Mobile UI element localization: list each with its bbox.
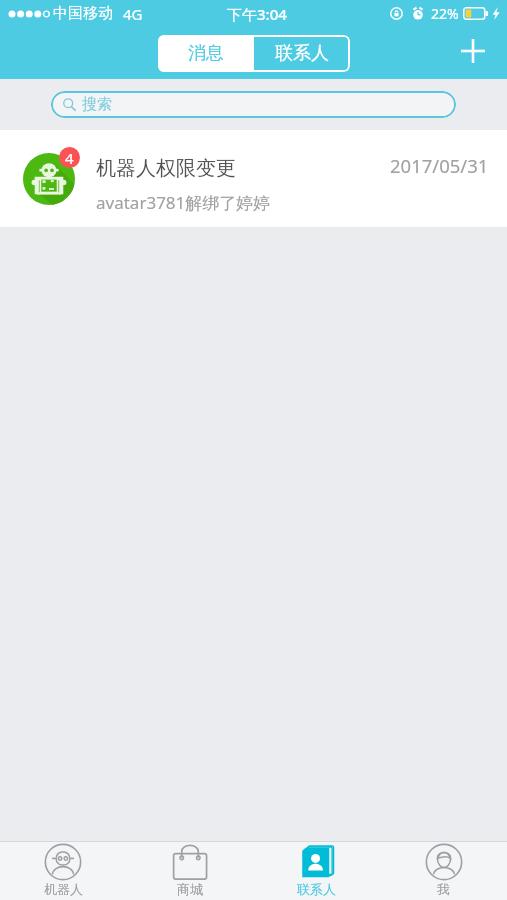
button[interactable]: 消息 [158,35,254,72]
staticText: 22% [431,4,459,23]
button[interactable]: 4 [0,130,507,227]
button[interactable]: 搜索 [51,91,456,118]
staticText: 我 [437,881,450,897]
staticText: 4G [123,4,143,24]
button[interactable]: Add [450,25,496,77]
button[interactable]: 我 [380,842,507,900]
staticText: 联系人 [297,881,336,897]
staticText: 中国移动 [53,4,113,23]
button[interactable]: 联系人 [253,842,380,900]
button[interactable]: 机器人 [0,842,126,900]
staticText: 商城 [177,881,203,897]
staticText: 4 [65,148,74,168]
button[interactable]: 商城 [126,842,253,900]
staticText: 下午3:04 [227,4,287,24]
staticText: 机器人 [44,881,83,897]
staticText: 机器人权限变更 [96,156,236,181]
staticText: 联系人 [275,42,329,65]
button[interactable]: 联系人 [254,35,350,72]
staticText: avatar3781解绑了婷婷 [96,191,271,214]
staticText: 搜索 [82,95,112,114]
staticText: 消息 [188,42,224,65]
staticText: 2017/05/31 [390,153,489,178]
